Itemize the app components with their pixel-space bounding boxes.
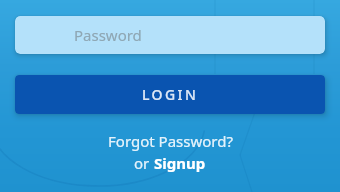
button[interactable]: Signup <box>154 153 206 173</box>
staticText: Signup <box>154 153 206 173</box>
staticText: or <box>134 153 154 173</box>
button[interactable]: LOGIN <box>15 75 325 114</box>
staticText: Password <box>74 25 142 45</box>
staticText: LOGIN <box>142 85 199 104</box>
button[interactable]: Password <box>15 16 325 54</box>
staticText: Forgot Password? <box>108 131 233 151</box>
button[interactable]: Forgot Password? <box>15 131 325 151</box>
